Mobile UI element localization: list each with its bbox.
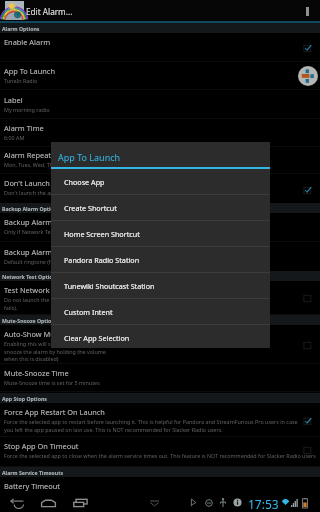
staticText: Only if Network Test fails [4,228,67,235]
staticText: you left the app paused on last use. Thi… [4,426,223,433]
staticText: Network Test Options [2,273,59,280]
button[interactable]: More options [300,0,320,21]
button[interactable]: Auto-Show Mute-Snooze [0,325,320,364]
button[interactable]: Force App Restart On Launch [0,403,320,437]
staticText: App To Launch [58,151,121,163]
staticText: Mute-Snooze time is set for 5 minutes [4,379,100,386]
button[interactable]: Alarm Time [0,119,320,147]
staticText: The alarm service will stop running afte… [4,492,218,499]
button[interactable]: Tunewiki Shoutcast Station [51,273,270,299]
staticText: Alarm Repeat [4,150,51,160]
staticText: Do not launch the app if network test [4,296,99,303]
staticText: My morning radio [4,106,50,113]
staticText: Edit Alarm... [26,6,73,17]
button[interactable]: Mute-Snooze Time [0,364,320,392]
button[interactable]: Alarm Repeat [0,146,320,174]
button[interactable]: Choose App [51,169,270,195]
staticText: Default ringtone (Helix) [4,258,64,265]
staticText: Alarm Time [4,123,44,133]
button[interactable]: Custom Intent [51,299,270,325]
staticText: Backup Alarm Options [2,205,60,212]
staticText: Custom Intent [64,307,113,317]
staticText: Test Network [4,285,50,295]
staticText: fails). [4,304,18,311]
staticText: Force App Restart On Launch [4,407,105,417]
staticText: Don't launch the app if the phone is mut… [4,189,113,196]
staticText: Stop App On Timeout [4,441,79,451]
staticText: Battery Timeout [4,481,60,491]
staticText: Alarm Options [2,25,40,32]
staticText: Auto-Show Mute-Snooze [4,329,90,339]
button[interactable]: Pandora Radio Station [51,247,270,273]
button[interactable]: Test Network [0,281,320,315]
staticText: Pandora Radio Station [64,255,140,265]
staticText: snooze the alarm by holding the volume [4,348,106,355]
staticText: App To Launch [4,66,55,76]
button[interactable]: Don't Launch If Muted [0,174,320,204]
staticText: Mon, Tues, Wed, Thurs, Fri [4,161,71,168]
staticText: Mute-Snooze Options [2,317,58,324]
staticText: Backup Alarm [4,217,53,227]
staticText: Force the selected app to close when the… [4,452,316,459]
staticText: TuneIn Radio [4,77,38,84]
staticText: 17:53 [248,496,279,512]
staticText: Don't Launch If Muted [4,178,82,188]
button[interactable]: Home [33,493,63,512]
staticText: Enabling this will show you the mute- [4,340,99,347]
staticText: Backup Alarm Ringtone [4,247,86,257]
staticText: Clear App Selection [64,333,130,343]
button[interactable]: Recent apps [65,493,95,512]
staticText: App Stop Options [2,395,47,402]
staticText: Force the selected app to restart before… [4,418,298,425]
button[interactable]: Home Screen Shortcut [51,221,270,247]
staticText: Label [4,95,23,105]
button[interactable]: Battery Timeout [0,477,320,493]
staticText: 6:00 AM [4,134,25,141]
staticText: Mute-Snooze Time [4,368,69,378]
staticText: Alarm Service Timeouts [2,469,64,476]
button[interactable]: Clear App Selection [51,325,270,351]
button[interactable]: Backup Alarm [0,213,320,242]
staticText: Create Shortcut [64,203,117,213]
button[interactable]: Create Shortcut [51,195,270,221]
button[interactable]: Enable Alarm [0,33,320,62]
button[interactable]: Back [2,493,32,512]
button[interactable]: Stop App On Timeout [0,437,320,467]
staticText: Tunewiki Shoutcast Station [64,281,155,291]
button[interactable]: Backup Alarm Ringtone [0,243,320,272]
staticText: Choose App [64,177,105,187]
button[interactable]: App To Launch [0,62,320,90]
button[interactable]: Label [0,91,320,119]
staticText: when this is disabled) [4,355,59,362]
staticText: Enable Alarm [4,37,51,47]
staticText: Home Screen Shortcut [64,229,140,239]
